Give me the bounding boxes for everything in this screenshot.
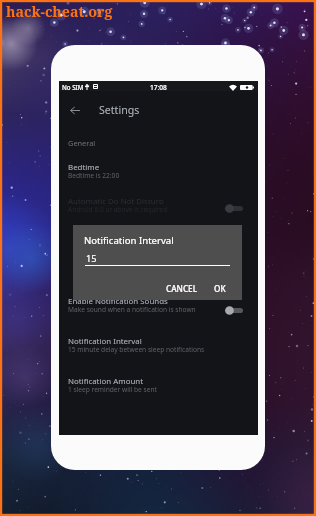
staticText: Bedtime (68, 162, 100, 173)
staticText: Notification Interval (68, 336, 142, 347)
staticText: Enable Notification Sounds (68, 296, 168, 307)
staticText: 15 (86, 252, 97, 265)
button[interactable]: Automatic Do Not Disturb (59, 192, 258, 220)
staticText: Make sound when a notification is shown (68, 305, 196, 314)
button[interactable]: OK (211, 281, 229, 296)
staticText: 1 sleep reminder will be sent (68, 385, 157, 394)
button[interactable]: Back (63, 98, 87, 122)
button[interactable]: Notification Amount (59, 372, 258, 400)
staticText: hack-cheat.org (6, 2, 113, 21)
staticText: Settings (99, 103, 140, 117)
staticText: Notification Amount (68, 376, 144, 387)
button[interactable]: CANCEL (163, 281, 201, 296)
button[interactable]: Enable Notification Sounds (59, 292, 258, 320)
staticText: No SIM (62, 83, 84, 91)
staticText: General (68, 138, 96, 148)
staticText: OK (214, 283, 226, 294)
staticText: Android 6.0 or above is required (68, 205, 168, 214)
staticText: Automatic Do Not Disturb (68, 196, 164, 207)
button[interactable]: Bedtime (59, 158, 258, 186)
staticText: CANCEL (166, 283, 198, 294)
staticText: Bedtime is 22:00 (68, 171, 120, 180)
staticText: 17:08 (150, 83, 167, 92)
staticText: 15 minute delay between sleep notificati… (68, 345, 205, 354)
button[interactable]: Notification Interval (59, 332, 258, 360)
staticText: Notification Interval (84, 234, 174, 247)
